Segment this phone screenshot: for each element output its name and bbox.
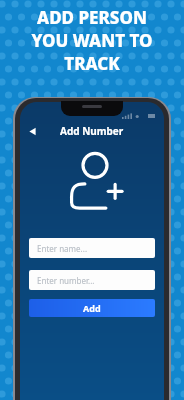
button[interactable]: Enter name... <box>29 238 155 258</box>
button[interactable]: Back <box>23 122 41 140</box>
staticText: Enter number... <box>37 275 95 286</box>
button[interactable]: Add <box>29 299 155 317</box>
staticText: Add <box>83 302 101 314</box>
button[interactable]: Enter number... <box>29 270 155 290</box>
staticText: TRACK <box>64 52 120 75</box>
staticText: Add Number <box>60 124 124 138</box>
staticText: Enter name... <box>37 243 88 254</box>
staticText: YOU WANT TO <box>31 29 153 52</box>
staticText: ADD PERSON <box>37 6 147 29</box>
